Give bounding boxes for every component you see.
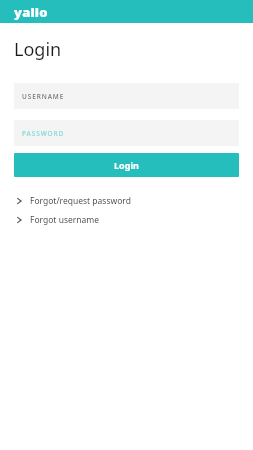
button[interactable]: USERNAME	[14, 83, 239, 109]
button[interactable]: Forgot username	[14, 210, 239, 229]
staticText: Login	[14, 37, 62, 62]
staticText: PASSWORD	[22, 129, 65, 138]
staticText: Forgot username	[30, 214, 100, 226]
staticText: Forgot/request password	[30, 195, 131, 207]
button[interactable]: PASSWORD	[14, 120, 239, 146]
button[interactable]: yallo home	[14, 3, 48, 21]
staticText: USERNAME	[22, 92, 65, 101]
staticText: yallo	[14, 3, 48, 21]
button[interactable]: Forgot/request password	[14, 191, 239, 210]
button[interactable]: Login	[14, 153, 239, 177]
staticText: Login	[114, 159, 139, 171]
